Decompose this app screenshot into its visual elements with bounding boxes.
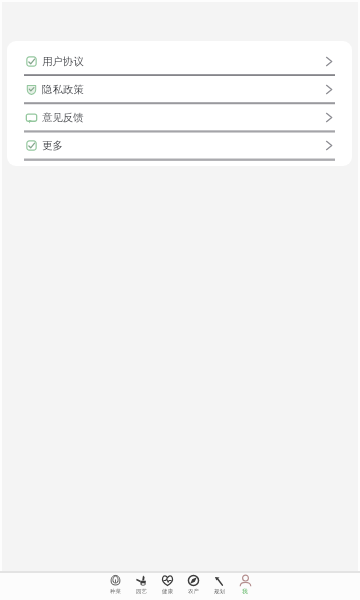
button[interactable]: 园艺 — [128, 573, 154, 595]
button[interactable]: 种菜 — [102, 573, 128, 595]
button[interactable]: 农产 — [180, 573, 206, 595]
staticText: 园艺 — [136, 588, 147, 595]
button[interactable]: 意见反馈 — [7, 103, 352, 131]
staticText: 更多 — [42, 139, 63, 152]
staticText: 农产 — [188, 588, 199, 595]
staticText: 用户协议 — [42, 55, 84, 68]
staticText: 隐私政策 — [42, 83, 84, 96]
button[interactable]: 健康 — [154, 573, 180, 595]
staticText: 规划 — [214, 588, 225, 595]
staticText: 健康 — [162, 588, 173, 595]
button[interactable]: 用户协议 — [7, 47, 352, 75]
button[interactable]: 隐私政策 — [7, 75, 352, 103]
button[interactable]: 我 — [232, 573, 258, 595]
staticText: 种菜 — [110, 588, 121, 595]
staticText: 我 — [242, 588, 248, 595]
button[interactable]: 更多 — [7, 131, 352, 159]
button[interactable]: 规划 — [206, 573, 232, 595]
staticText: 意见反馈 — [42, 111, 84, 124]
